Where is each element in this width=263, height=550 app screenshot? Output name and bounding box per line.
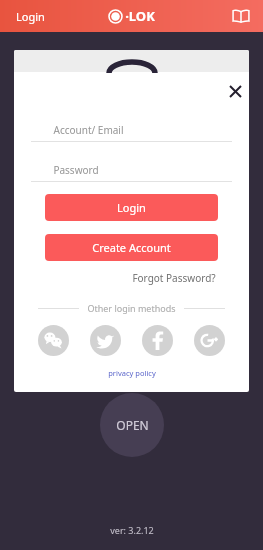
button[interactable]: privacy policy (14, 368, 249, 378)
staticText: ver: 3.2.12 (110, 524, 154, 536)
staticText: Other login methods (87, 302, 176, 314)
staticText: Password (53, 163, 99, 177)
button[interactable]: WeChat login (38, 325, 69, 356)
button[interactable]: OPEN (100, 393, 164, 457)
button[interactable]: Login (12, 5, 49, 28)
button[interactable]: Login (45, 194, 218, 221)
button[interactable]: Google plus login (194, 325, 225, 356)
button[interactable]: Account/ Email (31, 119, 232, 142)
staticText: privacy policy (108, 368, 156, 378)
button[interactable]: Manual (229, 4, 253, 28)
staticText: Forgot Password? (132, 271, 216, 285)
staticText: ·LOK (125, 7, 155, 25)
staticText: Account/ Email (53, 123, 124, 137)
staticText: Login (117, 200, 146, 215)
staticText: Create Account (92, 240, 171, 255)
button[interactable]: Create Account (45, 234, 218, 261)
button[interactable]: Facebook login (142, 325, 173, 356)
staticText: Login (16, 9, 45, 24)
button[interactable]: Twitter login (90, 325, 121, 356)
button[interactable]: Close (222, 78, 248, 104)
staticText: OPEN (116, 417, 149, 433)
button[interactable]: Password (31, 159, 232, 182)
button[interactable]: Forgot Password? (130, 269, 218, 287)
